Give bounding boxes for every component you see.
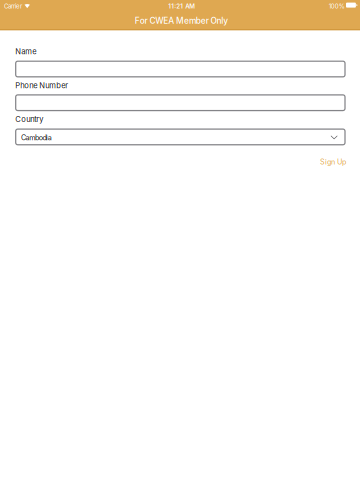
staticText: 100% — [329, 2, 345, 10]
staticText: Cambodia — [21, 133, 52, 142]
staticText: Sign Up — [320, 157, 346, 166]
staticText: For CWEA Member Only — [135, 16, 228, 26]
staticText: Carrier — [4, 2, 22, 10]
button[interactable]: Sign Up — [17, 157, 346, 167]
staticText: 11:21 AM — [168, 2, 195, 10]
staticText: Phone Number — [15, 81, 68, 90]
staticText: Country — [15, 115, 43, 124]
button[interactable]: Name — [16, 61, 345, 77]
button[interactable]: Cambodia — [16, 129, 345, 145]
staticText: Name — [15, 47, 36, 56]
button[interactable]: Phone Number — [16, 95, 345, 111]
